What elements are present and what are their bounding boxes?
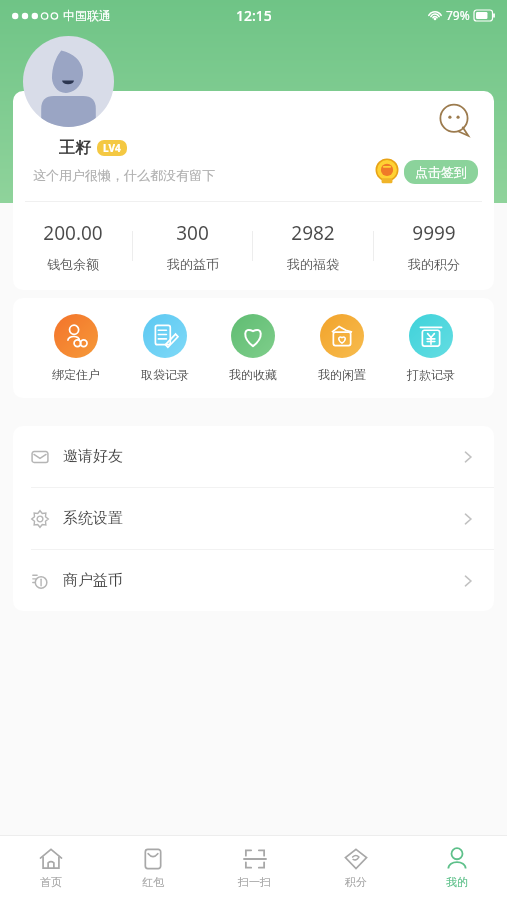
button[interactable]: 取袋记录: [139, 314, 191, 382]
button[interactable]: 200.00: [13, 202, 132, 290]
button[interactable]: 首页: [0, 836, 102, 900]
staticText: 首页: [40, 875, 62, 889]
staticText: 系统设置: [63, 509, 123, 528]
staticText: 王籽: [59, 138, 91, 158]
staticText: 9999: [412, 220, 456, 246]
staticText: 200.00: [43, 220, 103, 246]
staticText: 我的闲置: [318, 367, 366, 382]
button[interactable]: 邀请好友: [13, 426, 494, 487]
button[interactable]: Avatar: [23, 36, 114, 127]
button[interactable]: 我的收藏: [227, 314, 279, 382]
staticText: 我的收藏: [229, 367, 277, 382]
button[interactable]: 点击签到: [404, 160, 478, 184]
staticText: 商户益币: [63, 571, 123, 590]
staticText: LV4: [103, 141, 121, 155]
staticText: 我的益币: [167, 256, 219, 272]
staticText: 中国联通: [63, 8, 111, 23]
staticText: 这个用户很懒，什么都没有留下: [33, 167, 215, 183]
staticText: 2982: [291, 220, 335, 246]
button[interactable]: 系统设置: [13, 488, 494, 549]
staticText: 绑定住户: [52, 367, 100, 382]
button[interactable]: 我的: [406, 836, 507, 900]
button[interactable]: 9999: [374, 202, 494, 290]
staticText: 积分: [345, 875, 367, 889]
staticText: 邀请好友: [63, 447, 123, 466]
button[interactable]: 扫一扫: [204, 836, 305, 900]
button[interactable]: 打款记录: [405, 314, 457, 382]
staticText: 打款记录: [407, 367, 455, 382]
staticText: 点击签到: [415, 164, 467, 180]
button[interactable]: 红包: [102, 836, 204, 900]
staticText: 扫一扫: [238, 875, 271, 889]
button[interactable]: 商户益币: [13, 550, 494, 611]
staticText: 红包: [142, 875, 164, 889]
staticText: 79%: [446, 7, 470, 23]
staticText: 300: [176, 220, 209, 246]
button[interactable]: Messages: [438, 103, 472, 137]
button[interactable]: 我的闲置: [316, 314, 368, 382]
button[interactable]: 积分: [305, 836, 406, 900]
staticText: 我的福袋: [287, 256, 339, 272]
button[interactable]: 绑定住户: [50, 314, 102, 382]
staticText: 12:15: [236, 6, 272, 25]
button[interactable]: 2982: [253, 202, 373, 290]
staticText: 我的: [446, 875, 468, 889]
button[interactable]: 300: [133, 202, 252, 290]
staticText: 取袋记录: [141, 367, 189, 382]
staticText: 我的积分: [408, 256, 460, 272]
staticText: 钱包余额: [47, 256, 99, 272]
